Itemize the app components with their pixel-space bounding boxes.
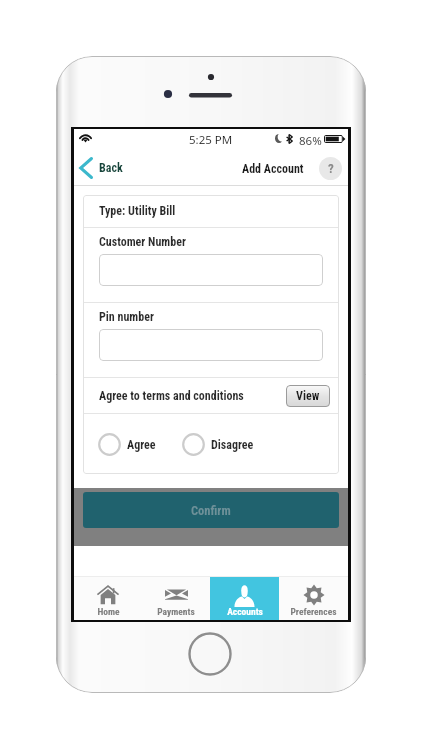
button[interactable]: Confirm xyxy=(83,492,339,528)
staticText: 5:25 PM xyxy=(189,132,233,148)
staticText: Customer Number xyxy=(99,235,186,249)
staticText: Confirm xyxy=(191,503,231,518)
button[interactable]: Disagree xyxy=(182,433,254,456)
staticText: Pin number xyxy=(99,310,154,324)
staticText: View xyxy=(296,389,320,403)
button[interactable]: Preferences xyxy=(279,577,348,620)
button[interactable]: Agree xyxy=(98,433,156,456)
staticText: Type: Utility Bill xyxy=(99,204,176,218)
staticText: Payments xyxy=(157,606,195,617)
staticText: Add Account xyxy=(242,162,304,176)
button[interactable]: Back xyxy=(74,154,131,182)
button[interactable]: Accounts xyxy=(210,577,279,620)
staticText: 86% xyxy=(299,133,322,149)
button[interactable] xyxy=(99,254,323,286)
button[interactable]: Payments xyxy=(142,577,210,620)
staticText: Back xyxy=(99,161,123,175)
staticText: ? xyxy=(328,161,334,176)
staticText: Agree to terms and conditions xyxy=(99,389,244,403)
button[interactable]: Type: Utility Bill xyxy=(83,195,339,227)
staticText: Agree xyxy=(127,438,156,452)
staticText: Preferences xyxy=(290,606,337,617)
staticText: Accounts xyxy=(227,606,263,617)
button[interactable]: Home xyxy=(74,577,142,620)
staticText: Disagree xyxy=(211,438,254,452)
staticText: Home xyxy=(97,606,120,617)
button[interactable]: Help xyxy=(319,157,342,180)
button[interactable]: View xyxy=(286,385,330,407)
button[interactable] xyxy=(99,329,323,361)
